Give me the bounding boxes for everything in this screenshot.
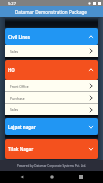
button[interactable]: Back [15,171,29,183]
staticText: Front Office [10,84,29,89]
staticText: Purchase [10,96,25,101]
button[interactable]: Lajpat nagar [5,118,98,135]
button[interactable]: Purchase [5,92,98,104]
staticText: Lajpat nagar [8,124,36,130]
button[interactable]: Sales [5,45,98,57]
button[interactable]: Home [45,171,59,183]
button[interactable]: Tilak Nagar [5,139,98,159]
staticText: Datamar Demonstration Package [15,9,87,15]
button[interactable]: Civil Lines [5,28,98,45]
button[interactable]: Recent apps [74,171,88,183]
button[interactable]: Sales [5,104,98,115]
button[interactable]: HO [5,60,98,80]
staticText: HO [8,67,15,73]
staticText: 5:27 [8,1,16,6]
staticText: Sales [10,107,19,112]
staticText: Tilak Nagar [8,146,34,152]
staticText: Sales [10,49,19,54]
staticText: Powered by Datamar Corporate Systems Pvt… [17,164,87,168]
button[interactable]: Front Office [5,80,98,92]
staticText: Civil Lines [8,34,30,40]
